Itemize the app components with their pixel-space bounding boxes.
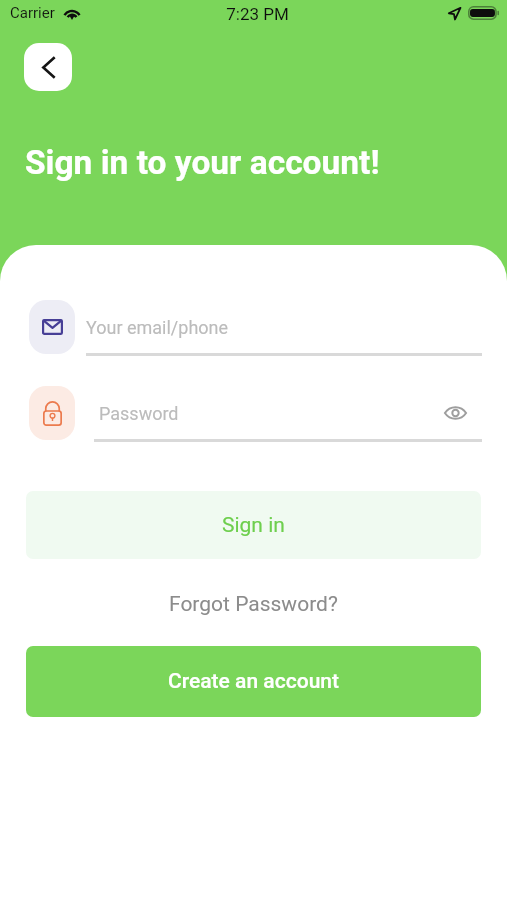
- button[interactable]: Password: [99, 396, 439, 430]
- staticText: Sign in: [222, 513, 285, 538]
- button[interactable]: Your email/phone: [86, 310, 426, 344]
- button[interactable]: Back: [24, 43, 72, 91]
- staticText: Create an account: [168, 669, 339, 694]
- staticText: Carrier: [10, 4, 55, 22]
- staticText: 7:23 PM: [226, 4, 289, 24]
- staticText: Sign in to your account!: [25, 143, 380, 182]
- button[interactable]: Forgot Password?: [169, 592, 338, 617]
- staticText: Password: [99, 403, 179, 424]
- button[interactable]: Sign in: [26, 491, 481, 559]
- button[interactable]: Show password: [440, 398, 470, 428]
- staticText: Your email/phone: [86, 317, 229, 338]
- button[interactable]: Create an account: [26, 646, 481, 717]
